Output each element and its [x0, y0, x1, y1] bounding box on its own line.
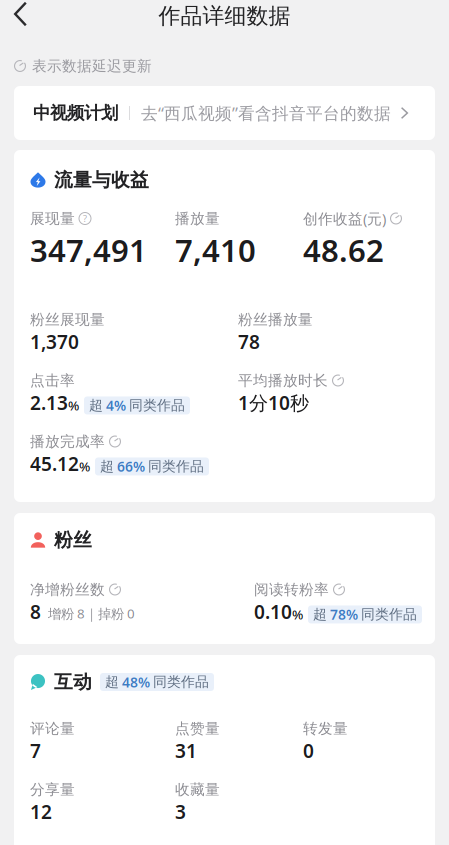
staticText: 点击率 — [30, 371, 75, 390]
staticText: 中视频计划 — [33, 102, 118, 124]
staticText: 超 — [89, 397, 103, 414]
staticText: 评论量 — [30, 719, 75, 738]
staticText: 8 — [30, 598, 41, 624]
staticText: 净增粉丝数 — [30, 580, 105, 599]
staticText: 流量与收益 — [54, 168, 149, 192]
staticText: % — [79, 457, 90, 475]
staticText: 超 — [105, 673, 119, 691]
staticText: 粉丝播放量 — [238, 310, 313, 329]
staticText: 347,491 — [30, 229, 147, 271]
staticText: 7,410 — [175, 229, 256, 271]
staticText: 点赞量 — [175, 719, 220, 738]
staticText: 48.62 — [303, 229, 384, 271]
staticText: 7 — [30, 737, 41, 763]
staticText: 创作收益(元) — [303, 208, 386, 228]
staticText: 作品详细数据 — [158, 2, 290, 30]
staticText: 去“西瓜视频”看含抖音平台的数据 — [141, 102, 391, 124]
staticText: 增粉 8｜掉粉 0 — [48, 604, 135, 622]
staticText: 展现量 — [30, 209, 75, 228]
staticText: 表示数据延迟更新 — [32, 57, 152, 75]
staticText: 超 — [313, 606, 327, 623]
staticText: ? — [83, 212, 87, 225]
staticText: % — [292, 605, 303, 623]
staticText: 1分10秒 — [238, 389, 309, 415]
staticText: 同类作品 — [153, 673, 209, 691]
staticText: 2.13 — [30, 389, 68, 415]
staticText: % — [68, 396, 79, 414]
staticText: 78% — [330, 605, 358, 624]
staticText: 1,370 — [30, 328, 79, 354]
staticText: 平均播放时长 — [238, 371, 328, 390]
staticText: 12 — [30, 798, 52, 824]
staticText: 超 — [100, 458, 114, 475]
staticText: 同类作品 — [148, 458, 204, 475]
staticText: 同类作品 — [361, 606, 417, 623]
staticText: 45.12 — [30, 450, 79, 476]
staticText: 分享量 — [30, 780, 75, 799]
button[interactable]: 中视频计划 — [14, 86, 435, 140]
staticText: 粉丝展现量 — [30, 310, 105, 329]
staticText: 31 — [175, 737, 197, 763]
staticText: 66% — [117, 457, 145, 476]
staticText: 粉丝 — [54, 528, 92, 552]
staticText: 0.10 — [254, 598, 292, 624]
staticText: 48% — [122, 673, 150, 691]
staticText: 78 — [238, 328, 260, 354]
staticText: 转发量 — [303, 719, 348, 738]
staticText: 播放量 — [175, 209, 220, 228]
button[interactable]: Back — [0, 0, 41, 28]
staticText: 0 — [303, 737, 314, 763]
staticText: 播放完成率 — [30, 432, 105, 451]
staticText: 同类作品 — [129, 397, 185, 414]
staticText: 收藏量 — [175, 780, 220, 799]
staticText: 4% — [106, 396, 126, 415]
staticText: 互动 — [54, 670, 92, 694]
staticText: 阅读转粉率 — [254, 580, 329, 599]
staticText: 3 — [175, 798, 186, 824]
